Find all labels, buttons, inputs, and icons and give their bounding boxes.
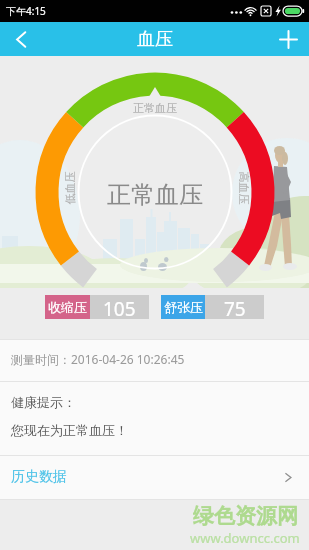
staticText: 75 [224,296,246,320]
staticText: 您现在为正常血压！ [11,422,128,438]
staticText: 高血压 [236,171,250,204]
staticText: 下午4:15 [6,4,46,18]
staticText: 收缩压 [48,299,87,315]
staticText: 血压 [137,28,173,51]
staticText: 105 [103,296,136,320]
button[interactable]: Back [0,22,42,56]
staticText: 正常血压 [107,180,203,210]
staticText: 健康提示： [11,394,76,410]
staticText: 历史数据 [11,468,67,486]
button[interactable]: 历史数据 [0,456,309,499]
button[interactable]: 舒张压 [161,295,264,319]
staticText: 舒张压 [164,299,203,315]
button[interactable]: Add [267,22,309,56]
staticText: 测量时间：2016-04-26 10:26:45 [11,351,185,367]
staticText: 绿色资源网 [193,503,298,529]
button[interactable]: 收缩压 [45,295,149,319]
staticText: 低血压 [62,171,76,204]
staticText: 正常血压 [133,101,177,115]
staticText: www.downcc.com [190,529,300,547]
